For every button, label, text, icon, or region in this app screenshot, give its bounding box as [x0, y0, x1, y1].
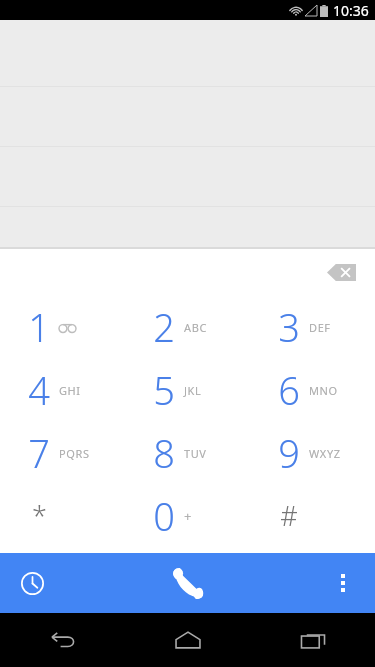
button[interactable]: More options: [319, 559, 367, 607]
staticText: #: [280, 497, 298, 534]
staticText: 1: [28, 301, 50, 353]
staticText: 9: [278, 427, 300, 479]
button[interactable]: 7: [0, 421, 125, 484]
button[interactable]: 9: [250, 421, 375, 484]
button[interactable]: Recent calls: [8, 559, 56, 607]
staticText: 7: [28, 427, 50, 479]
staticText: 5: [153, 364, 175, 416]
button[interactable]: 6: [250, 358, 375, 421]
button[interactable]: 5: [125, 358, 250, 421]
button[interactable]: Backspace: [317, 255, 365, 289]
staticText: +: [184, 507, 192, 525]
button[interactable]: 4: [0, 358, 125, 421]
button[interactable]: 8: [125, 421, 250, 484]
staticText: 10:36: [333, 1, 369, 20]
staticText: 8: [153, 427, 175, 479]
staticText: MNO: [309, 383, 338, 398]
button[interactable]: Call: [157, 553, 219, 613]
button[interactable]: Recent apps: [250, 613, 375, 667]
button[interactable]: 3: [250, 295, 375, 358]
staticText: DEF: [309, 320, 331, 335]
button[interactable]: 1: [0, 295, 125, 358]
button[interactable]: 0: [125, 484, 250, 547]
staticText: 3: [278, 301, 300, 353]
button[interactable]: 2: [125, 295, 250, 358]
staticText: PQRS: [59, 446, 90, 461]
staticText: *: [32, 497, 47, 534]
button[interactable]: Back: [0, 613, 125, 667]
button[interactable]: *: [0, 484, 125, 547]
staticText: TUV: [184, 446, 207, 461]
staticText: GHI: [59, 383, 81, 398]
staticText: 0: [153, 490, 175, 542]
button[interactable]: Home: [125, 613, 250, 667]
staticText: JKL: [184, 383, 202, 398]
staticText: 2: [153, 301, 175, 353]
staticText: ABC: [184, 320, 207, 335]
staticText: WXYZ: [309, 446, 341, 461]
staticText: 4: [28, 364, 50, 416]
button[interactable]: #: [250, 484, 375, 547]
staticText: 6: [278, 364, 300, 416]
